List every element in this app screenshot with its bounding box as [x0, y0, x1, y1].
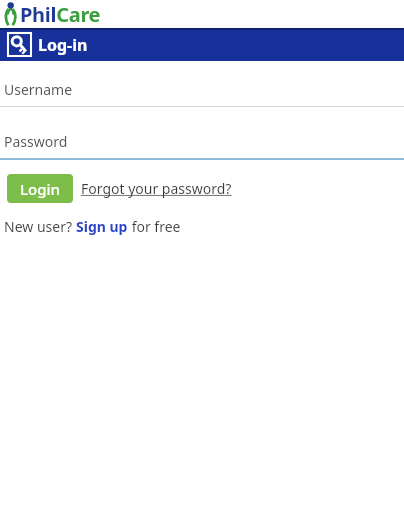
staticText: Log-in [38, 34, 88, 56]
button[interactable]: Sign up [76, 217, 128, 236]
staticText: New user? [4, 217, 76, 236]
staticText: Password [4, 132, 68, 151]
staticText: Sign up [76, 217, 128, 236]
staticText: Username [4, 80, 73, 99]
other: PhilCare ribbon logo [3, 2, 19, 26]
button[interactable]: Username [0, 73, 404, 106]
staticText: PhilCare [20, 1, 101, 28]
button[interactable]: Login [7, 174, 73, 203]
staticText: Login [20, 179, 60, 199]
other: Log-in key [8, 33, 31, 56]
staticText: for free [128, 217, 181, 236]
staticText: Forgot your password? [81, 179, 232, 198]
button[interactable]: Password [0, 125, 404, 158]
button[interactable]: Forgot your password? [81, 174, 232, 203]
